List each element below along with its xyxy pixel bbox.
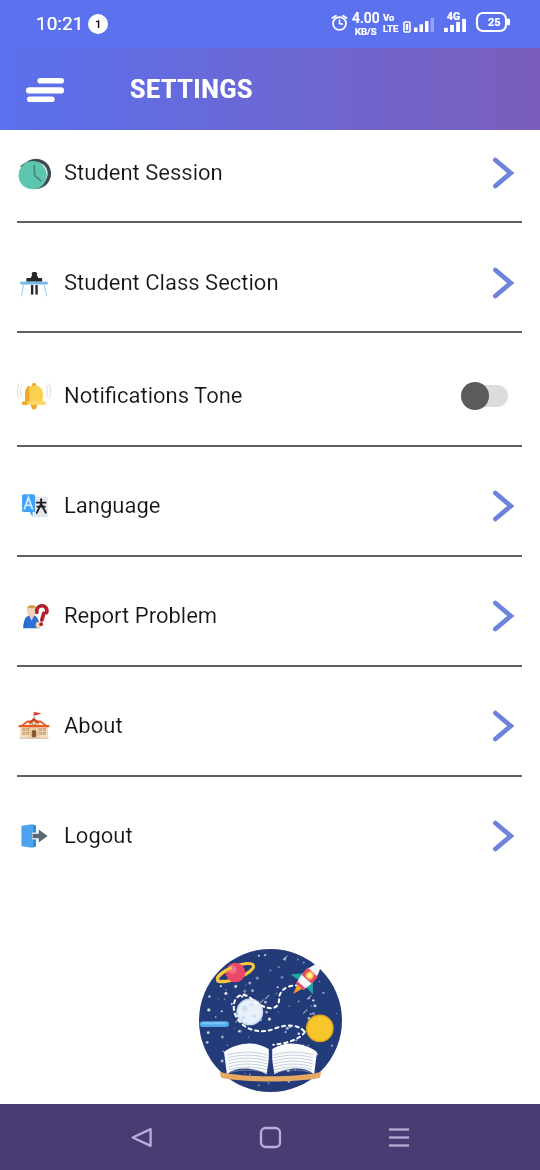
button[interactable]: Home <box>246 1113 294 1161</box>
button[interactable]: Logout <box>0 781 540 891</box>
staticText: LTE <box>383 23 399 34</box>
button[interactable]: Student Session <box>0 118 540 228</box>
button[interactable]: Notifications Tone <box>0 341 540 451</box>
staticText: Student Class Section <box>64 270 279 296</box>
staticText: Student Session <box>64 160 223 186</box>
staticText: 4.00 <box>352 10 380 26</box>
staticText: Notifications Tone <box>64 383 243 409</box>
staticText: KB/S <box>355 26 377 37</box>
staticText: 4G <box>447 10 461 22</box>
staticText: Vo <box>383 12 395 23</box>
button[interactable]: Report Problem <box>0 561 540 671</box>
staticText: Report Problem <box>64 603 218 629</box>
button[interactable]: Language <box>0 451 540 561</box>
staticText: 10:21 <box>36 12 84 34</box>
staticText: Logout <box>64 823 133 849</box>
staticText: SETTINGS <box>130 75 254 104</box>
staticText: 1 <box>95 18 102 31</box>
staticText: About <box>64 713 123 739</box>
button[interactable] <box>461 382 508 410</box>
button[interactable]: Recent apps <box>375 1113 423 1161</box>
button[interactable]: Back <box>117 1113 165 1161</box>
button[interactable]: Open navigation menu <box>14 66 76 114</box>
button[interactable]: About <box>0 671 540 781</box>
button[interactable]: Student Class Section <box>0 228 540 338</box>
staticText: 25 <box>488 16 501 29</box>
staticText: Language <box>64 493 161 519</box>
